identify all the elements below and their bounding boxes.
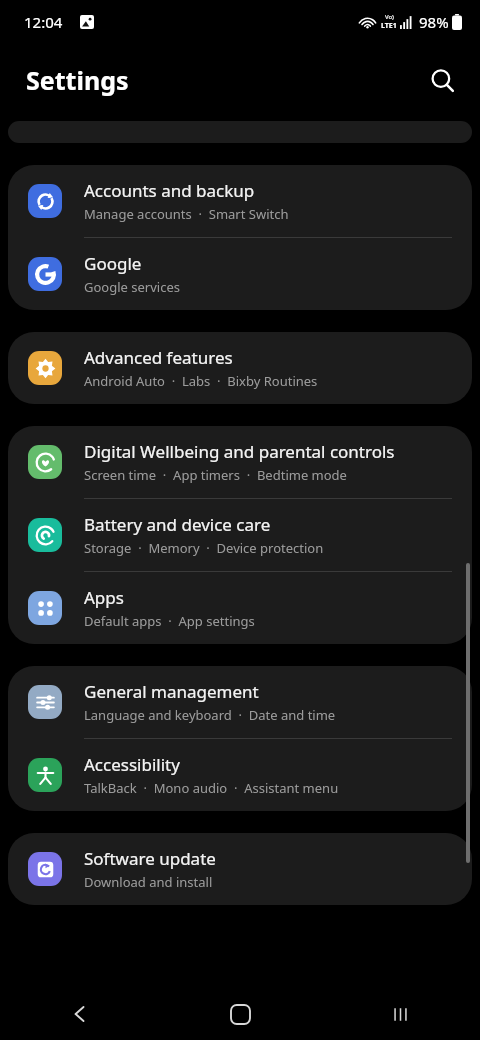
staticText: LTE1 bbox=[381, 21, 397, 31]
button[interactable]: Battery and device care bbox=[8, 499, 472, 571]
button[interactable]: Digital Wellbeing and parental controls bbox=[8, 426, 472, 498]
button[interactable]: Back bbox=[0, 988, 160, 1040]
button[interactable]: Accessibility bbox=[8, 739, 472, 811]
staticText: Android Auto · Labs · Bixby Routines bbox=[84, 372, 318, 390]
staticText: 12:04 bbox=[24, 12, 63, 32]
staticText: Accounts and backup bbox=[84, 179, 255, 202]
button[interactable]: Search bbox=[418, 56, 466, 104]
staticText: Software update bbox=[84, 847, 216, 870]
staticText: Google services bbox=[84, 278, 180, 296]
staticText: Accessibility bbox=[84, 753, 180, 776]
button[interactable]: Google bbox=[8, 238, 472, 310]
staticText: General management bbox=[84, 680, 259, 703]
staticText: Settings bbox=[26, 63, 129, 97]
staticText: Screen time · App timers · Bedtime mode bbox=[84, 466, 347, 484]
button[interactable]: Accounts and backup bbox=[8, 165, 472, 237]
staticText: Language and keyboard · Date and time bbox=[84, 706, 336, 724]
button[interactable]: Home bbox=[160, 988, 320, 1040]
button[interactable]: Recent apps bbox=[320, 988, 480, 1040]
staticText: Google bbox=[84, 252, 142, 275]
staticText: Manage accounts · Smart Switch bbox=[84, 205, 289, 223]
button[interactable]: Software update bbox=[8, 833, 472, 905]
staticText: Battery and device care bbox=[84, 513, 271, 536]
staticText: Vo) bbox=[385, 13, 394, 21]
staticText: Advanced features bbox=[84, 346, 233, 369]
staticText: 98% bbox=[419, 12, 449, 32]
button[interactable]: General management bbox=[8, 666, 472, 738]
staticText: TalkBack · Mono audio · Assistant menu bbox=[84, 779, 339, 797]
staticText: Apps bbox=[84, 586, 124, 609]
staticText: Digital Wellbeing and parental controls bbox=[84, 440, 395, 463]
button[interactable]: Advanced features bbox=[8, 332, 472, 404]
staticText: Storage · Memory · Device protection bbox=[84, 539, 324, 557]
button[interactable]: Apps bbox=[8, 572, 472, 644]
staticText: Default apps · App settings bbox=[84, 612, 255, 630]
staticText: Download and install bbox=[84, 873, 213, 891]
